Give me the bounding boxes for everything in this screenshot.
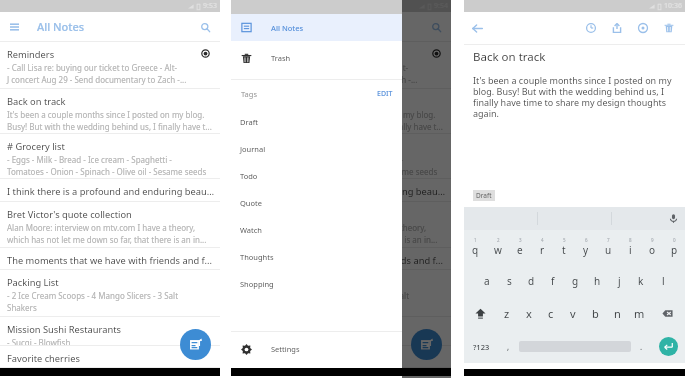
button[interactable]: 2 bbox=[487, 230, 509, 264]
staticText: 0 bbox=[673, 237, 676, 243]
button[interactable]: Todo bbox=[231, 162, 402, 189]
staticText: i bbox=[629, 243, 632, 257]
staticText: It's been a couple months since I posted… bbox=[238, 109, 436, 120]
button[interactable]: Shift bbox=[464, 297, 496, 330]
button[interactable]: g bbox=[564, 264, 586, 297]
button[interactable]: The moments that we have with friends an… bbox=[231, 248, 451, 270]
button[interactable]: New note bbox=[411, 329, 442, 360]
button[interactable]: Reminders bbox=[0, 42, 220, 89]
staticText: Packing List bbox=[238, 276, 290, 289]
button[interactable]: Bret Victor's quote collection bbox=[0, 202, 220, 248]
button[interactable]: Reminders bbox=[231, 42, 451, 89]
button[interactable]: Mission Sushi Restaurants bbox=[231, 317, 451, 346]
staticText: Back on track bbox=[7, 95, 66, 108]
staticText: r bbox=[540, 243, 545, 257]
button[interactable]: Bret Victor's quote collection bbox=[231, 202, 451, 248]
button[interactable]: Share bbox=[604, 19, 630, 37]
staticText: The moments that we have with friends an… bbox=[238, 254, 444, 267]
button[interactable]: All Notes bbox=[231, 14, 402, 41]
button[interactable]: h bbox=[586, 264, 608, 297]
button[interactable]: 8 bbox=[619, 230, 641, 264]
button[interactable]: New note bbox=[180, 329, 211, 360]
staticText: Busy! But with the wedding behind us, I … bbox=[238, 121, 443, 132]
button[interactable]: The moments that we have with friends an… bbox=[0, 248, 220, 270]
button[interactable]: a bbox=[475, 264, 498, 297]
button[interactable]: f bbox=[542, 264, 564, 297]
button[interactable]: 9 bbox=[641, 230, 663, 264]
button[interactable]: n bbox=[606, 297, 628, 330]
button[interactable]: ?123 bbox=[464, 330, 498, 363]
staticText: l bbox=[662, 274, 665, 288]
button[interactable]: Search bbox=[429, 20, 443, 34]
button[interactable]: Revision history bbox=[578, 19, 604, 37]
staticText: z bbox=[504, 306, 510, 321]
button[interactable]: m bbox=[628, 297, 650, 330]
staticText: n bbox=[614, 306, 621, 321]
button[interactable]: Trash bbox=[231, 41, 402, 75]
button[interactable]: # Grocery list bbox=[0, 134, 220, 179]
button[interactable]: Journal bbox=[231, 135, 402, 162]
button[interactable]: Favorite cherries bbox=[231, 346, 451, 368]
button[interactable]: Shopping bbox=[231, 270, 402, 297]
staticText: Tomatoes - Onion - Spinach - Olive oil -… bbox=[238, 166, 438, 177]
button[interactable]: Open navigation drawer bbox=[237, 19, 253, 35]
button[interactable]: EDIT bbox=[377, 89, 393, 99]
button[interactable]: # Grocery list bbox=[231, 134, 451, 179]
button[interactable]: c bbox=[540, 297, 562, 330]
staticText: Reminders bbox=[238, 48, 286, 61]
staticText: Mission Sushi Restaurants bbox=[7, 323, 122, 336]
button[interactable]: Mission Sushi Restaurants bbox=[0, 317, 220, 346]
button[interactable]: 1 bbox=[464, 230, 487, 264]
button[interactable]: Watch bbox=[231, 216, 402, 243]
button[interactable]: . bbox=[631, 330, 652, 363]
button[interactable]: Favorite cherries bbox=[0, 346, 220, 368]
button[interactable]: k bbox=[630, 264, 652, 297]
button[interactable]: , bbox=[498, 330, 519, 363]
button[interactable]: Thoughts bbox=[231, 243, 402, 270]
button[interactable]: b bbox=[584, 297, 606, 330]
button[interactable]: Draft bbox=[231, 108, 402, 135]
button[interactable]: I think there is a profound and enduring… bbox=[231, 179, 451, 202]
button[interactable]: Open navigation drawer bbox=[6, 19, 22, 35]
button[interactable]: 5 bbox=[553, 230, 575, 264]
staticText: - 2 Ice Cream Scoops - 4 Mango Slicers -… bbox=[238, 290, 410, 301]
button[interactable]: 3 bbox=[509, 230, 531, 264]
button[interactable]: z bbox=[496, 297, 518, 330]
button[interactable]: v bbox=[562, 297, 584, 330]
button[interactable]: Quote bbox=[231, 189, 402, 216]
staticText: . bbox=[640, 341, 643, 352]
button[interactable]: d bbox=[520, 264, 542, 297]
button[interactable]: s bbox=[498, 264, 520, 297]
staticText: Favorite cherries bbox=[238, 352, 311, 365]
staticText: Busy! But with the wedding behind us, I … bbox=[7, 121, 212, 132]
button[interactable]: 0 bbox=[663, 230, 685, 264]
button[interactable]: Enter bbox=[659, 337, 678, 356]
button[interactable]: Packing List bbox=[0, 270, 220, 317]
button[interactable]: l bbox=[652, 264, 674, 297]
button[interactable]: j bbox=[608, 264, 630, 297]
staticText: Reminders bbox=[7, 48, 55, 61]
staticText: Thoughts bbox=[240, 252, 274, 262]
button[interactable]: x bbox=[518, 297, 540, 330]
button[interactable]: 7 bbox=[597, 230, 619, 264]
button[interactable]: Draft bbox=[473, 190, 495, 201]
staticText: 6 bbox=[585, 237, 588, 243]
button[interactable]: Back bbox=[468, 19, 486, 37]
staticText: Tags bbox=[241, 89, 257, 99]
button[interactable]: Back on track bbox=[231, 89, 451, 134]
button[interactable]: I think there is a profound and enduring… bbox=[0, 179, 220, 202]
button[interactable]: Search bbox=[198, 20, 212, 34]
button[interactable]: 4 bbox=[531, 230, 553, 264]
button[interactable]: 6 bbox=[575, 230, 597, 264]
button[interactable]: Backspace bbox=[650, 297, 685, 330]
button[interactable]: Settings bbox=[231, 332, 402, 366]
staticText: - Sucgi - Blowfish bbox=[238, 337, 302, 345]
staticText: t bbox=[562, 243, 566, 257]
button[interactable]: Back on track bbox=[0, 89, 220, 134]
button[interactable]: Packing List bbox=[231, 270, 451, 317]
button[interactable]: Delete bbox=[656, 19, 682, 37]
button[interactable]: Info bbox=[630, 19, 656, 37]
